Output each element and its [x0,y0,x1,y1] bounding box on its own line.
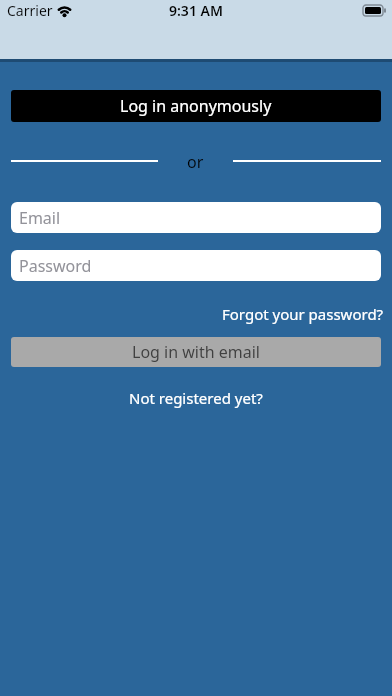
button[interactable]: Forgot your password? [222,304,384,324]
staticText: Password [19,255,92,277]
staticText: or [187,151,204,171]
staticText: Log in anonymously [120,95,272,117]
staticText: Not registered yet? [129,388,263,408]
staticText: Forgot your password? [222,304,384,324]
staticText: Log in with email [132,341,260,363]
staticText: Email [19,207,61,229]
button[interactable]: Email [11,202,381,233]
staticText: Carrier [7,1,53,20]
button[interactable]: Log in anonymously [11,90,381,122]
staticText: 9:31 AM [169,1,223,20]
button[interactable]: Not registered yet? [129,388,263,408]
button[interactable]: Log in with email [11,337,381,367]
button[interactable]: Password [11,250,381,281]
